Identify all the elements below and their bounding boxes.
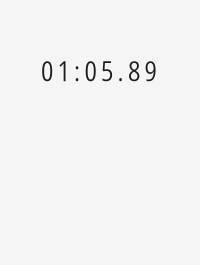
staticText: 01:05.89 — [41, 53, 156, 89]
